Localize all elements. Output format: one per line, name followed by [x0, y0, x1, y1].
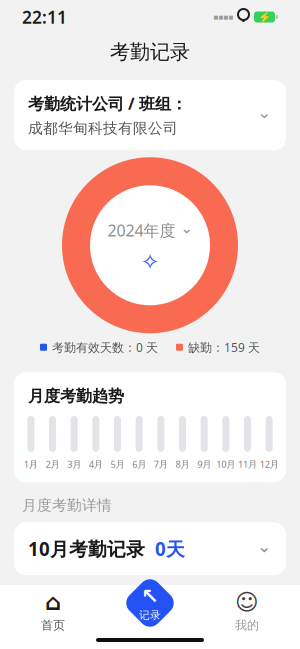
button[interactable]: 记录: [121, 574, 179, 632]
staticText: 首页: [41, 618, 65, 633]
staticText: 成都华甸科技有限公司: [28, 119, 178, 137]
staticText: ⌄: [257, 102, 272, 122]
staticText: 3月: [67, 458, 81, 470]
staticText: ✧: [140, 249, 159, 275]
staticText: 10月考勤记录: [28, 536, 145, 561]
staticText: 12月: [260, 458, 279, 470]
staticText: ⚡: [258, 11, 271, 23]
staticText: 缺勤：159 天: [188, 339, 260, 355]
staticText: 2024年度: [107, 220, 175, 241]
staticText: 记录: [139, 609, 161, 622]
staticText: 1月: [24, 458, 38, 470]
button[interactable]: 2024年度: [107, 220, 192, 241]
staticText: 月度考勤趋势: [28, 386, 124, 406]
staticText: 7月: [154, 458, 168, 470]
staticText: ☺: [235, 589, 259, 615]
staticText: 9月: [197, 458, 211, 470]
staticText: 0天: [155, 536, 185, 561]
staticText: ▪▪▪▪: [213, 12, 233, 22]
staticText: 2月: [45, 458, 59, 470]
staticText: 5月: [110, 458, 124, 470]
button[interactable]: ⌂: [26, 592, 80, 630]
staticText: ⌂: [45, 589, 61, 615]
staticText: ⌄: [257, 536, 272, 556]
button[interactable]: 考勤统计公司 / 班组：: [14, 80, 286, 150]
staticText: 22:11: [22, 5, 67, 28]
staticText: 8月: [175, 458, 189, 470]
staticText: ⌄: [180, 220, 192, 236]
staticText: 4月: [89, 458, 103, 470]
staticText: 考勤有效天数：0 天: [52, 339, 158, 355]
button[interactable]: ☺: [220, 592, 274, 630]
staticText: 6月: [132, 458, 146, 470]
staticText: 10月: [216, 458, 235, 470]
staticText: 月度考勤详情: [22, 496, 112, 514]
staticText: 我的: [235, 618, 259, 633]
staticText: 考勤记录: [110, 40, 190, 64]
button[interactable]: 10月考勤记录: [14, 522, 286, 575]
staticText: 11月: [238, 458, 257, 470]
staticText: ↖: [141, 584, 159, 608]
staticText: 考勤统计公司 / 班组：: [28, 93, 187, 114]
